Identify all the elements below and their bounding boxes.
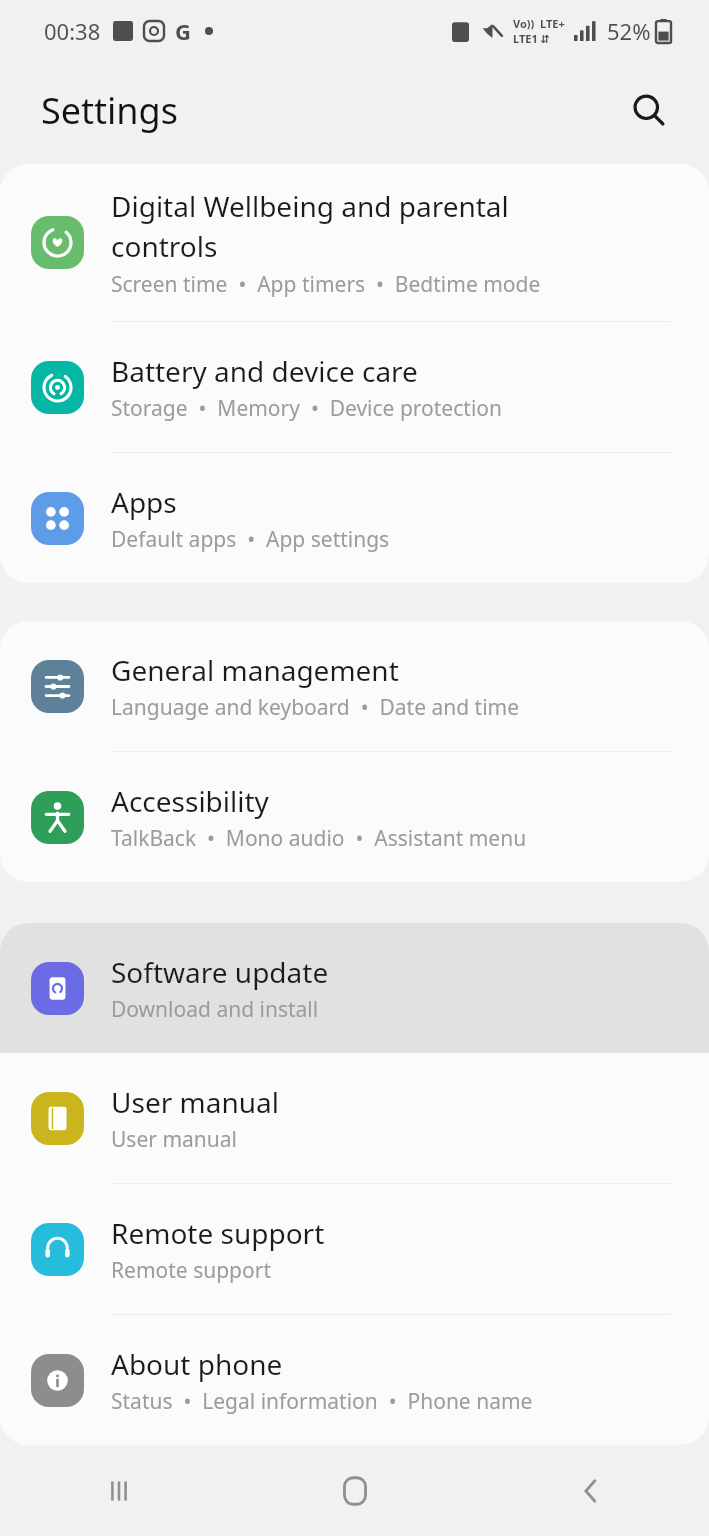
button[interactable]: Accessibility (0, 752, 709, 882)
staticText: Status • Legal information • Phone name (111, 1387, 533, 1416)
button[interactable]: Back (473, 1445, 709, 1536)
staticText: Vo)) LTE+ (513, 16, 565, 31)
staticText: Storage • Memory • Device protection (111, 394, 502, 423)
button[interactable]: Recents (0, 1445, 237, 1536)
button[interactable]: About phone (0, 1315, 709, 1445)
staticText: Download and install (111, 995, 319, 1024)
staticText: Remote support (111, 1256, 271, 1285)
staticText: 00:38 (44, 16, 101, 46)
staticText: Accessibility (111, 782, 269, 820)
staticText: Apps (111, 483, 177, 521)
button[interactable]: User manual (0, 1053, 709, 1183)
staticText: Screen time • App timers • Bedtime mode (111, 270, 541, 299)
staticText: Software update (111, 953, 329, 991)
staticText: About phone (111, 1345, 283, 1383)
staticText: LTE1 ⇵ (513, 31, 550, 46)
button[interactable]: Remote support (0, 1184, 709, 1314)
button[interactable]: Home (237, 1445, 473, 1536)
staticText: Remote support (111, 1214, 325, 1252)
button[interactable]: Digital Wellbeing and parental controls (0, 164, 709, 321)
button[interactable]: Software update (0, 923, 709, 1053)
staticText: 52% (607, 16, 651, 46)
staticText: TalkBack • Mono audio • Assistant menu (111, 824, 527, 853)
staticText: Battery and device care (111, 352, 418, 390)
button[interactable]: General management (0, 621, 709, 751)
staticText: Default apps • App settings (111, 525, 390, 554)
staticText: User manual (111, 1125, 237, 1154)
staticText: Digital Wellbeing and parental controls (111, 187, 581, 266)
staticText: User manual (111, 1083, 279, 1121)
staticText: Settings (41, 86, 178, 135)
button[interactable]: Search (619, 80, 679, 140)
staticText: Language and keyboard • Date and time (111, 693, 520, 722)
staticText: G (175, 16, 191, 46)
button[interactable]: Battery and device care (0, 322, 709, 452)
staticText: General management (111, 651, 399, 689)
button[interactable]: Apps (0, 453, 709, 583)
